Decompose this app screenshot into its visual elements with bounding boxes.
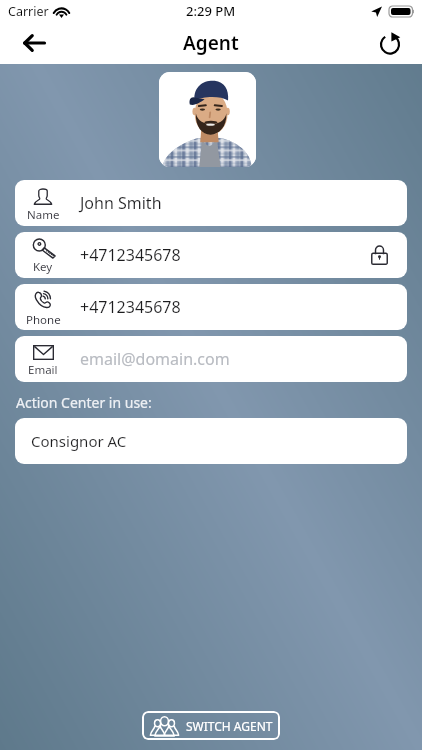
staticText: John Smith [80,192,162,214]
staticText: Phone [26,312,61,328]
button[interactable]: Back [12,22,56,64]
staticText: Action Center in use: [16,393,152,412]
staticText: Name [27,207,60,223]
button[interactable]: Phone [15,284,407,330]
staticText: email@domain.com [80,348,230,370]
staticText: SWITCH AGENT [186,718,273,734]
staticText: +4712345678 [80,244,181,266]
button[interactable]: Key [15,232,407,278]
staticText: Carrier [8,3,49,20]
staticText: 2:29 PM [186,2,236,20]
button[interactable]: Agent photo [159,72,256,167]
staticText: +4712345678 [80,296,181,318]
button[interactable]: Email [15,336,407,382]
button[interactable]: Locked [367,243,391,267]
staticText: Email [28,362,58,378]
button[interactable]: SWITCH AGENT [142,711,280,740]
button[interactable]: Refresh [368,22,412,64]
button[interactable]: Name [15,180,407,226]
staticText: Consignor AC [31,431,127,451]
staticText: Key [33,259,53,275]
staticText: Agent [183,30,239,56]
button[interactable]: Consignor AC [15,418,407,464]
